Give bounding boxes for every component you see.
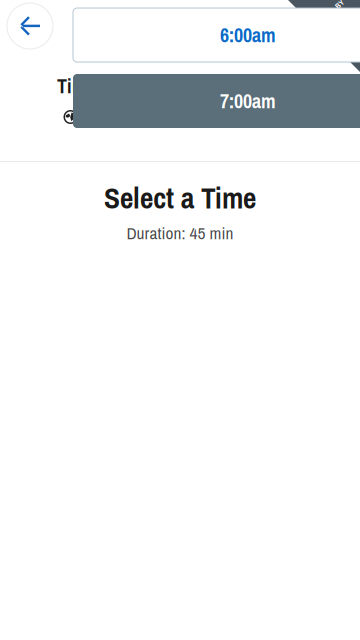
staticText: Select a Time [104,178,256,218]
staticText: 6:00am [220,21,276,48]
button[interactable]: 6:00am [73,8,360,62]
staticText: May 20, 2023 [130,29,230,56]
button[interactable]: Back [2,0,58,54]
button[interactable]: India Standard Time (1:30pm) [0,104,360,130]
button[interactable]: 7:00am [73,74,360,128]
staticText: Time zone [57,72,138,99]
staticText: Saturday [137,5,222,37]
staticText: POWERED BY [313,8,357,19]
staticText: Duration: 45 min [126,221,233,245]
staticText: India Standard Time (1:30pm) [92,105,284,129]
staticText: 7:00am [220,87,276,114]
